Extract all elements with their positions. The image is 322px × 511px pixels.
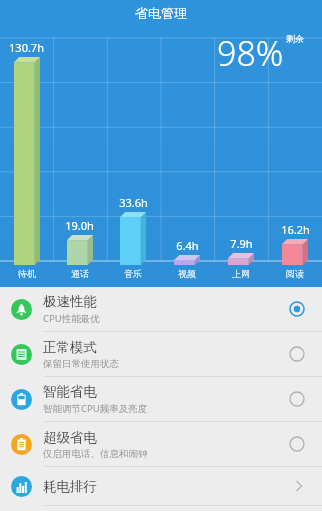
staticText: 音乐 — [124, 268, 142, 279]
staticText: 智能省电 — [43, 383, 97, 400]
staticText: 130.7h — [9, 40, 44, 55]
staticText: 省电管理 — [135, 5, 187, 21]
staticText: 7.9h — [230, 236, 253, 251]
staticText: 阅读 — [286, 268, 304, 279]
staticText: 正常模式 — [43, 339, 97, 356]
staticText: 超级省电 — [43, 429, 97, 446]
staticText: CPU性能最优 — [43, 312, 100, 325]
other: 查看耗电排行 — [290, 477, 308, 495]
staticText: 待机 — [18, 268, 36, 279]
staticText: 智能调节CPU频率及亮度 — [43, 402, 148, 415]
staticText: 6.4h — [176, 238, 199, 253]
button[interactable]: 极速性能 — [0, 287, 322, 331]
button[interactable]: 智能省电 选择 — [286, 388, 308, 410]
staticText: 98% — [217, 30, 284, 76]
staticText: 33.6h — [119, 195, 148, 210]
staticText: 仅启用电话、信息和闹钟 — [43, 448, 148, 460]
button[interactable]: 智能省电 — [0, 377, 322, 421]
button[interactable]: 超级省电 — [0, 422, 322, 466]
button[interactable]: 超级省电 选择 — [286, 433, 308, 455]
staticText: 剩余 — [286, 33, 304, 44]
button[interactable]: 耗电排行 — [0, 467, 322, 505]
button[interactable]: 正常模式 选择 — [286, 343, 308, 365]
staticText: 16.2h — [281, 222, 310, 237]
staticText: 19.0h — [65, 218, 94, 233]
button[interactable]: 正常模式 — [0, 332, 322, 376]
button[interactable]: 极速性能 选择 — [286, 298, 308, 320]
staticText: 保留日常使用状态 — [43, 358, 119, 370]
staticText: 极速性能 — [43, 293, 97, 310]
staticText: 通话 — [71, 268, 89, 279]
staticText: 上网 — [232, 268, 250, 279]
staticText: 视频 — [178, 268, 196, 279]
staticText: 耗电排行 — [43, 478, 97, 495]
